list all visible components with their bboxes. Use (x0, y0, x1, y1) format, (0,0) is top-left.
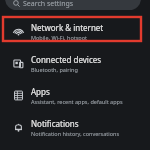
button[interactable]: Connected devices (0, 48, 150, 78)
other: Connected devices (13, 58, 24, 69)
button[interactable]: Search settings (5, 0, 141, 10)
button[interactable]: Apps (0, 80, 150, 110)
staticText: Mobile, Wi-Fi, hotspot (31, 34, 88, 41)
staticText: Bluetooth, pairing (31, 66, 78, 73)
button[interactable]: Network & internet (0, 16, 150, 46)
other: Network & internet (13, 26, 24, 37)
staticText: Notification history, conversations (31, 130, 120, 137)
staticText: Search settings (23, 0, 74, 9)
staticText: Assistant, recent apps, default apps (31, 98, 123, 105)
staticText: Network & internet (31, 22, 104, 33)
staticText: Notifications (31, 118, 79, 129)
staticText: Apps (31, 86, 50, 97)
staticText: Connected devices (31, 54, 102, 65)
button[interactable]: Notifications (0, 112, 150, 142)
other: Notifications (13, 122, 24, 133)
other: Apps (13, 90, 24, 101)
